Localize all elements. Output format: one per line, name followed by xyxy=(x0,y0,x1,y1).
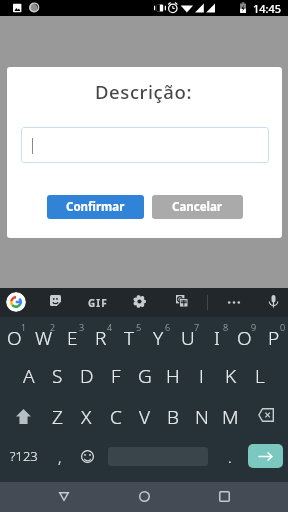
button[interactable]: Voice input xyxy=(268,294,279,309)
staticText: 8 xyxy=(223,321,229,332)
staticText: 7 xyxy=(194,321,200,332)
button[interactable] xyxy=(158,397,187,435)
button[interactable]: Back xyxy=(44,482,84,512)
staticText: C xyxy=(110,404,122,424)
button[interactable] xyxy=(230,320,259,358)
staticText: 1 xyxy=(21,321,27,332)
button[interactable] xyxy=(216,358,245,396)
button[interactable] xyxy=(58,320,87,358)
button[interactable] xyxy=(86,320,115,358)
staticText: Descrição: xyxy=(7,79,281,104)
staticText: P xyxy=(268,325,280,345)
staticText: GIF xyxy=(88,296,108,310)
staticText: 5 xyxy=(136,321,142,332)
staticText: K xyxy=(225,363,237,383)
button[interactable]: Enter xyxy=(248,444,283,468)
button[interactable]: Home xyxy=(124,482,164,512)
staticText: Confirmar xyxy=(66,199,125,215)
button[interactable] xyxy=(130,358,159,396)
staticText: L xyxy=(255,363,265,383)
staticText: U xyxy=(181,325,195,345)
staticText: R xyxy=(95,325,107,345)
button[interactable] xyxy=(72,358,101,396)
button[interactable] xyxy=(158,358,187,396)
button[interactable] xyxy=(0,320,29,358)
button[interactable] xyxy=(43,397,72,435)
staticText: 6 xyxy=(165,321,171,332)
button[interactable]: Confirmar xyxy=(47,195,144,219)
button[interactable]: Backspace xyxy=(250,397,282,433)
button[interactable]: Stickers xyxy=(50,295,61,306)
staticText: F xyxy=(111,363,121,383)
staticText: Y xyxy=(153,325,164,345)
button[interactable] xyxy=(216,397,245,435)
staticText: 14:45 xyxy=(253,1,282,16)
button[interactable] xyxy=(43,358,72,396)
button[interactable] xyxy=(115,320,144,358)
staticText: Z xyxy=(52,404,63,424)
staticText: O xyxy=(237,325,252,345)
button[interactable]: Cancelar xyxy=(152,195,243,219)
staticText: W xyxy=(35,325,53,345)
button[interactable] xyxy=(29,320,58,358)
button[interactable] xyxy=(130,397,159,435)
button[interactable] xyxy=(187,397,216,435)
button[interactable]: Settings xyxy=(133,295,146,308)
button[interactable]: . xyxy=(216,441,244,471)
staticText: 9 xyxy=(251,321,257,332)
staticText: H xyxy=(166,363,180,383)
button[interactable] xyxy=(101,358,130,396)
button[interactable]: ?123 xyxy=(8,441,38,471)
button[interactable] xyxy=(14,358,43,396)
staticText: ?123 xyxy=(10,447,38,465)
button[interactable]: GIF xyxy=(88,296,108,310)
staticText: 3 xyxy=(79,321,85,332)
staticText: T xyxy=(124,325,135,345)
staticText: 2 xyxy=(50,321,56,332)
staticText: G xyxy=(138,363,152,383)
staticText: N xyxy=(195,404,209,424)
staticText: S xyxy=(52,363,63,383)
staticText: E xyxy=(67,325,78,345)
button[interactable]: Google xyxy=(6,292,26,312)
staticText: B xyxy=(167,404,179,424)
button[interactable] xyxy=(144,320,173,358)
button[interactable] xyxy=(187,358,216,396)
button[interactable] xyxy=(173,320,202,358)
button[interactable] xyxy=(245,358,274,396)
button[interactable] xyxy=(202,320,231,358)
button[interactable]: Shift xyxy=(8,397,38,433)
button[interactable] xyxy=(259,320,288,358)
staticText: D xyxy=(80,363,94,383)
button[interactable]: Recents xyxy=(204,482,244,512)
staticText: Cancelar xyxy=(172,199,223,215)
staticText: J xyxy=(199,363,204,383)
staticText: A xyxy=(23,363,35,383)
staticText: . xyxy=(228,447,232,467)
staticText: 0 xyxy=(280,321,286,332)
button[interactable]: Emoji xyxy=(73,441,101,471)
button[interactable]: , xyxy=(46,441,74,471)
staticText: X xyxy=(81,404,92,424)
staticText: I xyxy=(214,325,220,345)
staticText: M xyxy=(222,404,239,424)
staticText: V xyxy=(139,404,151,424)
staticText: , xyxy=(58,447,62,467)
staticText: 4 xyxy=(107,321,113,332)
button[interactable]: More options xyxy=(226,298,242,307)
staticText: Q xyxy=(7,325,22,345)
button[interactable] xyxy=(72,397,101,435)
button[interactable] xyxy=(21,127,269,163)
button[interactable]: Translate xyxy=(176,295,188,307)
button[interactable] xyxy=(101,397,130,435)
